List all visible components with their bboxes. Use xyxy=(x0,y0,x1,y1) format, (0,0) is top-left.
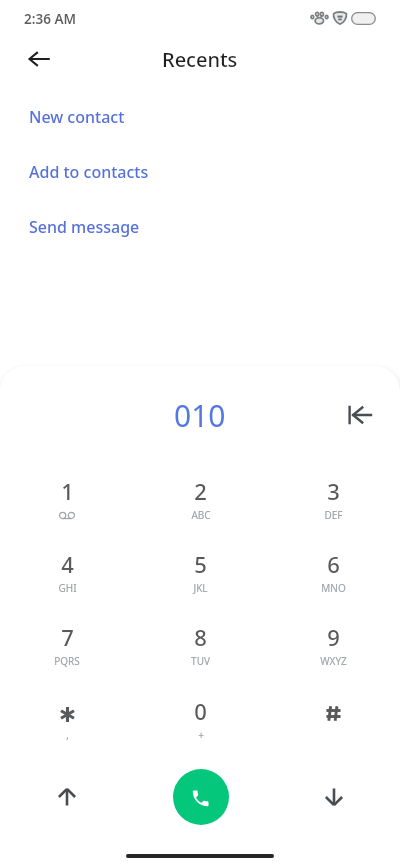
button[interactable]: 1 xyxy=(0,459,134,525)
button[interactable]: 0 xyxy=(134,679,267,745)
button[interactable]: ‚ xyxy=(0,679,134,745)
staticText: 8 xyxy=(194,622,207,652)
button[interactable]: New contact xyxy=(0,89,400,144)
staticText: 0 xyxy=(194,696,207,726)
button[interactable]: Send message xyxy=(0,199,400,254)
staticText: ABC xyxy=(191,508,211,522)
staticText: MNO xyxy=(321,581,346,595)
button[interactable]: Call xyxy=(173,769,229,825)
staticText: GHI xyxy=(58,581,77,595)
staticText: JKL xyxy=(193,581,208,595)
button[interactable]: 8 xyxy=(134,605,267,671)
staticText: 2:36 AM xyxy=(24,10,77,28)
button[interactable]: 2 xyxy=(134,459,267,525)
staticText: Recents xyxy=(162,46,238,73)
staticText: 6 xyxy=(327,549,340,579)
button[interactable]: 5 xyxy=(134,532,267,598)
staticText: PQRS xyxy=(54,654,80,668)
staticText: New contact xyxy=(29,106,125,128)
staticText: 1 xyxy=(61,476,74,506)
button[interactable]: Back xyxy=(16,36,62,80)
button[interactable]: 6 xyxy=(267,532,400,598)
staticText: 9 xyxy=(327,622,340,652)
button[interactable] xyxy=(267,679,400,745)
staticText: 2 xyxy=(194,476,207,506)
staticText: 010 xyxy=(174,395,226,436)
staticText: + xyxy=(198,728,204,742)
button[interactable]: 3 xyxy=(267,459,400,525)
staticText: TUV xyxy=(191,654,210,668)
button[interactable]: 4 xyxy=(0,532,134,598)
button[interactable]: 7 xyxy=(0,605,134,671)
button[interactable]: Add to contacts xyxy=(0,144,400,199)
staticText: ‚ xyxy=(66,728,69,742)
staticText: 5 xyxy=(194,549,207,579)
staticText: DEF xyxy=(324,508,343,522)
staticText: 3 xyxy=(327,476,340,506)
staticText: Send message xyxy=(29,216,140,238)
button[interactable]: 9 xyxy=(267,605,400,671)
button[interactable]: Move up xyxy=(44,774,90,820)
button[interactable]: Move down xyxy=(311,774,357,820)
button[interactable]: Backspace xyxy=(338,394,380,436)
staticText: Add to contacts xyxy=(29,161,149,183)
staticText: 7 xyxy=(61,622,74,652)
staticText: WXYZ xyxy=(320,654,347,668)
staticText: 4 xyxy=(61,549,74,579)
